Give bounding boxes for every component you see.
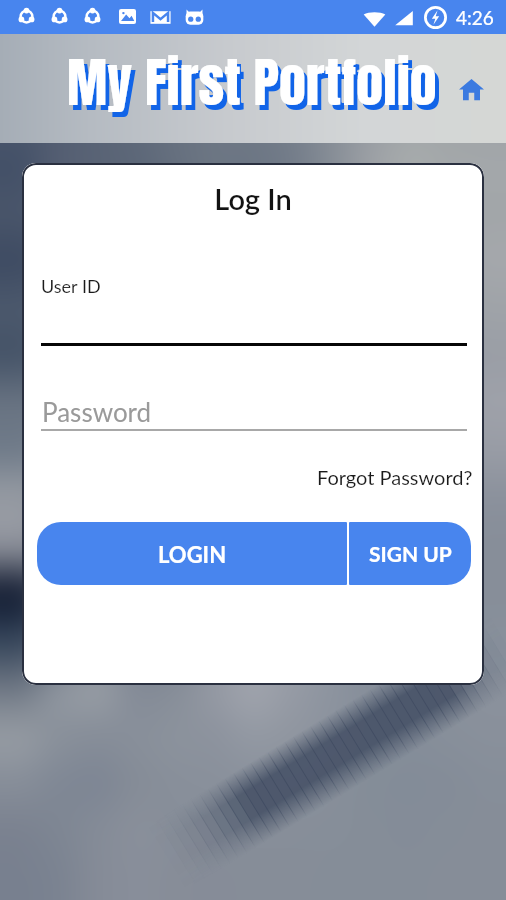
staticText: LOGIN: [158, 541, 227, 567]
staticText: 4:26: [456, 6, 494, 29]
staticText: Log In: [22, 181, 484, 216]
staticText: My First Portfolio: [71, 46, 441, 127]
button[interactable]: SIGN UP: [349, 522, 471, 585]
button[interactable]: LOGIN: [37, 522, 347, 585]
staticText: Password: [42, 396, 152, 427]
staticText: SIGN UP: [369, 541, 452, 566]
button[interactable]: Forgot Password?: [317, 465, 473, 489]
button[interactable]: Home: [452, 70, 490, 108]
staticText: My First Portfolio: [67, 41, 437, 122]
staticText: User ID: [41, 275, 101, 297]
